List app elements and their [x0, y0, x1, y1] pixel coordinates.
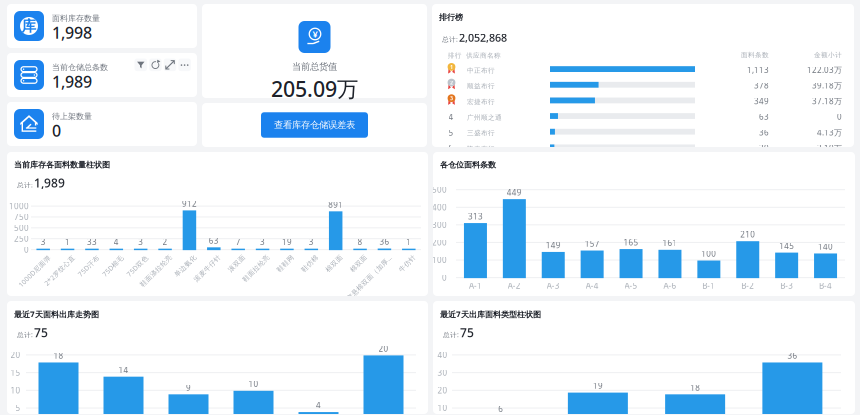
staticText: 0: [837, 111, 842, 122]
staticText: 19: [593, 380, 603, 391]
staticText: 15: [11, 367, 21, 378]
staticText: 140: [818, 241, 833, 252]
staticText: 总计:: [17, 180, 33, 189]
button[interactable]: Refresh: [149, 58, 162, 71]
staticText: 当前仓储总条数: [52, 62, 108, 72]
staticText: 36: [787, 350, 797, 361]
staticText: 隆泰布行: [467, 145, 495, 153]
staticText: 165: [624, 237, 639, 248]
staticText: 349: [754, 96, 769, 106]
staticText: 鞋仿棉: [293, 253, 314, 261]
staticText: A-4: [586, 280, 599, 291]
staticText: 33: [87, 237, 97, 247]
staticText: 广州顺之通: [467, 113, 502, 122]
staticText: 750: [14, 212, 29, 222]
staticText: 36: [379, 236, 389, 247]
staticText: 金额小计: [814, 51, 842, 59]
staticText: 2,052,868: [459, 30, 507, 45]
staticText: 排行: [448, 51, 462, 60]
staticText: 39.18万: [812, 80, 842, 91]
staticText: 棉双面: [318, 253, 339, 261]
button[interactable]: 1: [432, 4, 854, 20]
staticText: 4: [114, 237, 119, 247]
staticText: 161: [662, 238, 677, 248]
staticText: 500: [432, 184, 447, 195]
button[interactable]: 2: [432, 4, 854, 20]
staticText: 滚麦牛仔针: [182, 253, 217, 261]
staticText: 三盛布行: [467, 129, 495, 137]
staticText: 100: [701, 248, 716, 259]
staticText: 200: [432, 237, 447, 248]
staticText: 6: [448, 143, 453, 153]
staticText: 7: [236, 237, 241, 247]
staticText: B-1: [702, 280, 715, 291]
staticText: 鞋鞋网: [269, 253, 290, 261]
staticText: 36: [759, 127, 769, 138]
staticText: 1: [406, 237, 411, 247]
staticText: 100: [432, 255, 447, 265]
staticText: 0: [442, 272, 447, 283]
staticText: 122.03万: [807, 64, 842, 75]
staticText: 8: [358, 237, 363, 247]
button[interactable]: More: [178, 58, 191, 71]
staticText: 牛仿针: [391, 253, 412, 261]
staticText: 最近7天出库面料类型柱状图: [440, 309, 541, 320]
staticText: 4: [316, 400, 321, 410]
staticText: 1,989: [52, 71, 92, 92]
staticText: 总计:: [17, 330, 33, 339]
staticText: 20: [378, 343, 388, 354]
staticText: 1,998: [52, 22, 92, 43]
button[interactable]: 3: [432, 4, 854, 20]
staticText: 30: [759, 143, 769, 153]
staticText: 149: [546, 240, 561, 250]
staticText: 总计:: [443, 330, 459, 339]
staticText: 宏捷布行: [467, 98, 495, 106]
staticText: 面料条数: [741, 51, 769, 59]
staticText: 18: [53, 350, 63, 361]
staticText: 0: [24, 244, 29, 255]
button[interactable]: Expand: [164, 58, 176, 71]
staticText: 0: [52, 120, 61, 141]
staticText: 500: [14, 222, 29, 233]
staticText: 400: [432, 202, 447, 213]
staticText: 空悬棉双面（加厚…: [326, 253, 387, 262]
staticText: 75: [460, 325, 474, 340]
staticText: 10: [437, 403, 447, 413]
staticText: 查看库存仓储误差表: [274, 119, 355, 131]
staticText: 313: [468, 211, 483, 222]
staticText: 面料库存数量: [52, 13, 100, 23]
button[interactable]: Filter: [134, 58, 147, 71]
staticText: 63: [209, 235, 219, 246]
staticText: 5: [16, 403, 21, 413]
staticText: 总计:: [442, 35, 458, 44]
button[interactable]: 当前仓储总条数: [7, 53, 197, 97]
staticText: 2: [450, 79, 453, 86]
staticText: 棉双面: [342, 253, 363, 261]
staticText: 10: [248, 379, 258, 389]
button[interactable]: 5: [432, 4, 854, 20]
staticText: 中正布行: [467, 66, 495, 75]
staticText: 5: [448, 127, 453, 138]
staticText: 75: [34, 325, 48, 340]
staticText: 891: [328, 199, 343, 210]
staticText: 滚双面: [220, 253, 241, 261]
staticText: 250: [14, 233, 29, 244]
button[interactable]: 查看库存仓储误差表: [261, 112, 368, 138]
staticText: A-2: [508, 280, 521, 291]
button[interactable]: 待上架数量: [7, 102, 197, 146]
staticText: 最近7天面料出库走势图: [14, 309, 99, 320]
staticText: 449: [507, 187, 522, 198]
button[interactable]: 6: [432, 4, 854, 20]
staticText: 1000D尼面弹: [4, 253, 46, 262]
staticText: B-4: [819, 280, 832, 291]
staticText: 1,113: [747, 64, 769, 75]
staticText: A-3: [547, 280, 560, 291]
button[interactable]: 库: [7, 4, 197, 48]
button[interactable]: 4: [432, 4, 854, 20]
staticText: 2*2罗纹心直: [31, 253, 71, 262]
staticText: B-3: [780, 280, 793, 291]
staticText: 75D汗布: [68, 253, 95, 262]
staticText: 4.13万: [817, 127, 842, 138]
staticText: 2: [163, 237, 168, 247]
staticText: 6: [498, 403, 503, 414]
